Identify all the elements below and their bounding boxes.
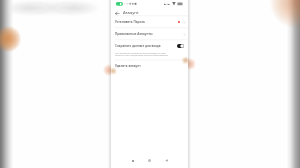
staticText: Удалить аккаунт xyxy=(115,64,141,68)
button[interactable]: Сохранять данные для входа xyxy=(111,40,188,51)
button[interactable]: Back xyxy=(162,156,171,165)
button[interactable]: Home xyxy=(145,156,154,165)
staticText: Установить Пароль xyxy=(115,20,146,24)
button[interactable]: Recent apps xyxy=(128,156,137,165)
button[interactable]: Back xyxy=(114,10,120,16)
button[interactable]: Привязанные Аккаунты xyxy=(111,28,188,40)
staticText: Привязанные Аккаунты xyxy=(115,32,153,36)
button[interactable]: Установить Пароль xyxy=(111,16,188,28)
staticText: Это позволит автоматически входить в ваш… xyxy=(115,51,169,57)
staticText: Аккаунт xyxy=(123,10,139,15)
staticText: Сохранять данные для входа xyxy=(115,44,161,48)
button[interactable]: Удалить аккаунт xyxy=(111,60,188,71)
